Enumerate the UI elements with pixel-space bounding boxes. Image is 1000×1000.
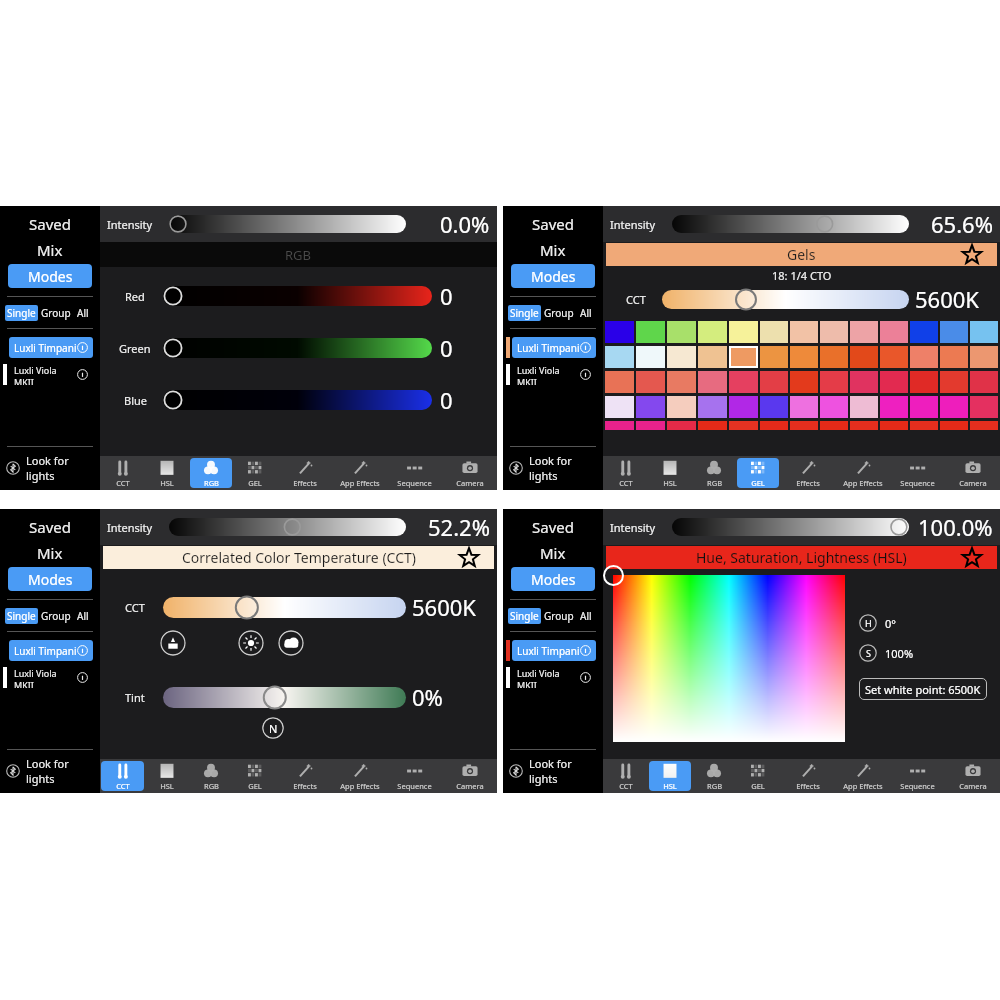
button[interactable]: Sequence: [388, 458, 441, 488]
button[interactable]: HSL: [649, 761, 691, 791]
button[interactable]: [169, 518, 406, 536]
button[interactable]: HSL: [146, 458, 188, 488]
button[interactable]: Effects: [781, 761, 834, 791]
button[interactable]: Correlated Color Temperature (CCT): [103, 546, 494, 569]
button[interactable]: HSL: [649, 458, 691, 488]
button[interactable]: Group: [544, 609, 574, 623]
button[interactable]: Luxli Timpani: [14, 640, 88, 661]
button[interactable]: Effects: [278, 458, 331, 488]
button[interactable]: GEL: [234, 761, 276, 791]
button[interactable]: RGB: [190, 458, 232, 488]
button[interactable]: Gels: [606, 243, 997, 266]
button[interactable]: Camera: [443, 761, 496, 791]
button[interactable]: Camera: [443, 458, 496, 488]
button[interactable]: Bluetooth: [6, 453, 100, 483]
button[interactable]: [163, 338, 432, 358]
button[interactable]: Bluetooth: [509, 756, 603, 786]
button[interactable]: Candle: [160, 630, 186, 656]
button[interactable]: Cloudy: [278, 630, 304, 656]
button[interactable]: Set white point: 6500K: [865, 678, 981, 700]
button[interactable]: [672, 215, 909, 233]
button[interactable]: App Effects: [333, 458, 386, 488]
button[interactable]: RGB: [693, 761, 735, 791]
button[interactable]: Bluetooth: [6, 756, 100, 786]
button[interactable]: Group: [41, 609, 71, 623]
button[interactable]: HSL: [146, 761, 188, 791]
button[interactable]: CCT: [604, 458, 647, 488]
button[interactable]: Single: [7, 609, 36, 623]
button[interactable]: GEL: [737, 458, 779, 488]
button[interactable]: [163, 390, 432, 410]
button[interactable]: App Effects: [836, 761, 889, 791]
button[interactable]: GEL: [234, 458, 276, 488]
button[interactable]: RGB: [693, 458, 735, 488]
button[interactable]: Luxli Viola MKII: [517, 364, 591, 385]
button[interactable]: Group: [41, 306, 71, 320]
button[interactable]: Sequence: [891, 761, 944, 791]
button[interactable]: Luxli Timpani: [14, 337, 88, 358]
button[interactable]: CCT: [604, 761, 647, 791]
button[interactable]: Modes: [8, 567, 92, 591]
button[interactable]: CCT: [101, 761, 144, 791]
button[interactable]: Luxli Timpani: [517, 337, 591, 358]
button[interactable]: [672, 518, 909, 536]
button[interactable]: Luxli Viola MKII: [517, 667, 591, 688]
button[interactable]: Sequence: [388, 761, 441, 791]
button[interactable]: All: [580, 609, 592, 623]
button[interactable]: [163, 687, 406, 708]
button[interactable]: Neutral tint: [262, 717, 284, 739]
button[interactable]: All: [77, 609, 89, 623]
button[interactable]: Camera: [946, 458, 999, 488]
button[interactable]: All: [77, 306, 89, 320]
button[interactable]: Sequence: [891, 458, 944, 488]
button[interactable]: CCT: [101, 458, 144, 488]
